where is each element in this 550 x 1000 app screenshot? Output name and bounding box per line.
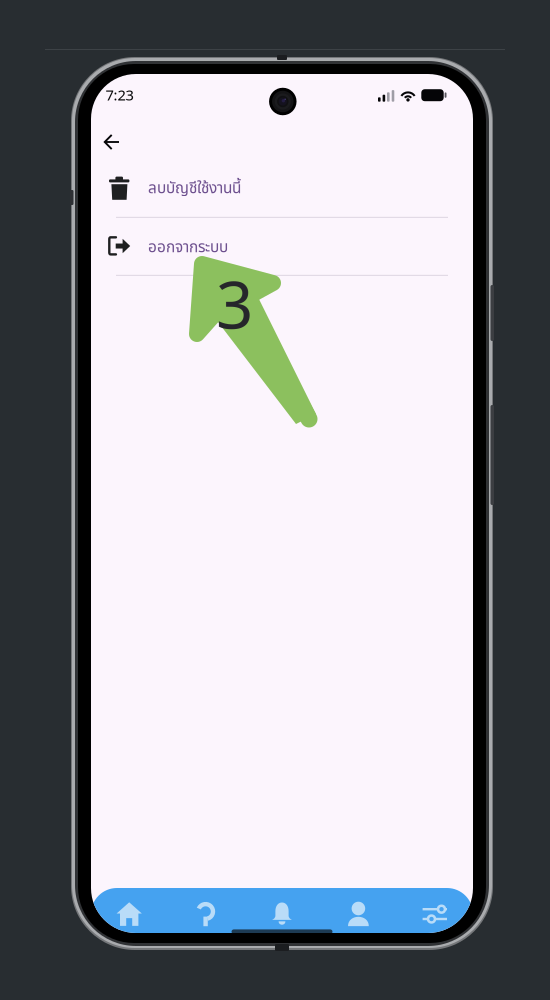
button[interactable]: Back bbox=[94, 125, 130, 159]
staticText: ออกจากระบบ bbox=[148, 236, 228, 259]
button[interactable]: ลบบัญชีใช้งานนี้ bbox=[91, 171, 473, 218]
button[interactable]: Home bbox=[91, 891, 167, 937]
button[interactable]: ออกจากระบบ bbox=[91, 218, 473, 276]
button[interactable]: Notifications bbox=[244, 891, 320, 937]
button[interactable]: Settings bbox=[397, 891, 473, 937]
staticText: 3 bbox=[216, 260, 253, 347]
staticText: 7:23 bbox=[105, 85, 133, 104]
button[interactable]: Storm bbox=[167, 891, 244, 937]
staticText: ลบบัญชีใช้งานนี้ bbox=[148, 177, 241, 200]
button[interactable]: Profile bbox=[320, 891, 397, 937]
